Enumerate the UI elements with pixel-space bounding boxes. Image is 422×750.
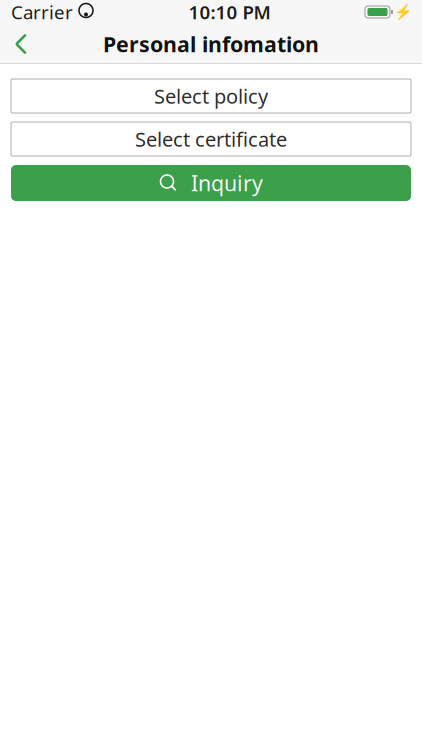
staticText: Carrier: [11, 0, 73, 24]
staticText: Select policy: [154, 83, 268, 109]
button[interactable]: Inquiry: [11, 165, 411, 201]
staticText: ⚡: [394, 4, 412, 20]
button[interactable]: Select certificate: [11, 122, 411, 156]
staticText: 10:10 PM: [188, 0, 270, 24]
button[interactable]: Back: [0, 24, 42, 64]
button[interactable]: Select policy: [11, 79, 411, 113]
staticText: Select certificate: [135, 126, 287, 152]
staticText: Personal infomation: [103, 30, 319, 58]
staticText: Inquiry: [191, 169, 263, 197]
